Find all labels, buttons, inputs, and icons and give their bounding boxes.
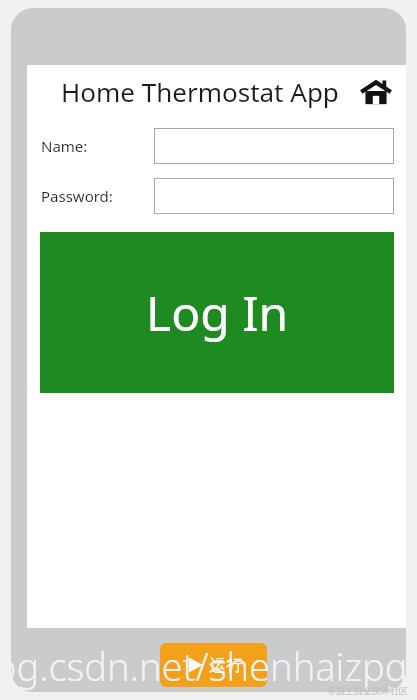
staticText: Home Thermostat App bbox=[61, 74, 339, 109]
button[interactable]: 运行 bbox=[160, 643, 267, 687]
button[interactable]: Home bbox=[357, 73, 395, 111]
staticText: Log In bbox=[146, 280, 289, 345]
button[interactable]: Password: bbox=[154, 178, 394, 214]
button[interactable]: Name: bbox=[154, 128, 394, 164]
staticText: 运行 bbox=[209, 655, 243, 676]
button[interactable]: Log In bbox=[40, 232, 394, 393]
staticText: Name: bbox=[41, 136, 88, 156]
staticText: og.csdn.net/shenhaizpg bbox=[0, 640, 408, 692]
staticText: Password: bbox=[41, 186, 113, 206]
staticText: @掘土掘金技术社区 bbox=[328, 684, 409, 696]
